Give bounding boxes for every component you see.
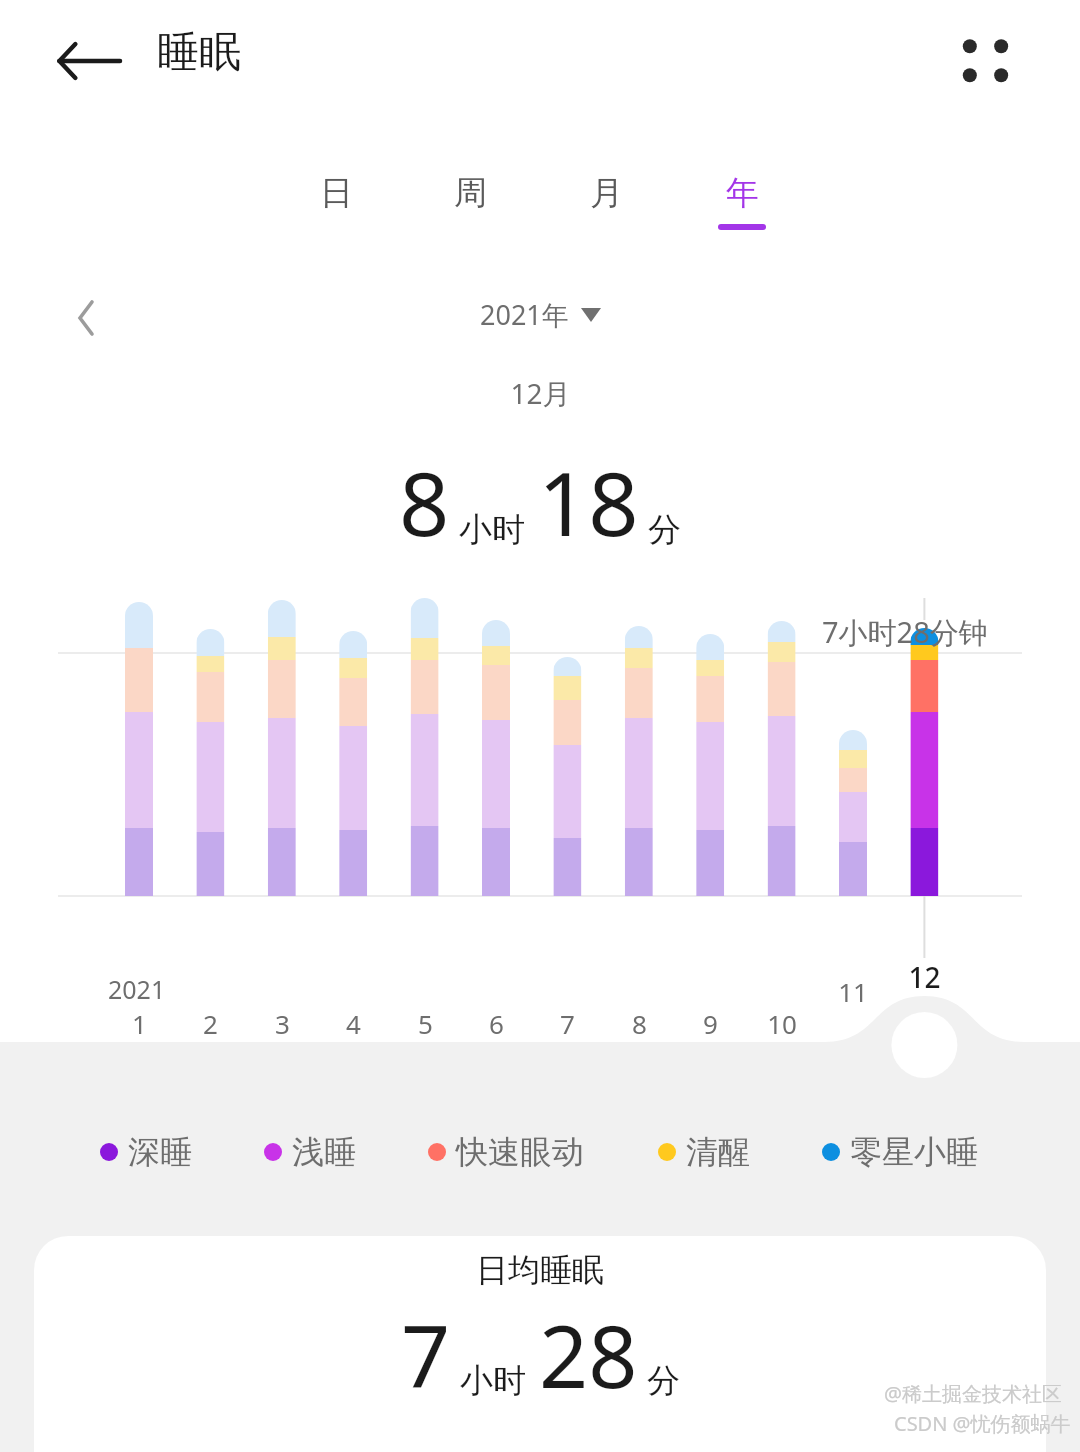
staticText: 11 <box>838 974 868 1009</box>
staticText: 浅睡 <box>292 1132 356 1172</box>
staticText: 2021年 <box>480 296 569 333</box>
staticText: 清醒 <box>686 1132 750 1172</box>
button[interactable]: Back <box>52 26 126 96</box>
button[interactable]: 12 <box>884 958 964 996</box>
staticText: 7小时28分钟 <box>822 612 988 652</box>
staticText: 9 <box>703 1006 718 1041</box>
staticText: 周 <box>454 172 487 214</box>
button[interactable]: 6 <box>456 1006 536 1041</box>
button[interactable]: More options <box>936 22 1034 98</box>
staticText: @稀土掘金技术社区 <box>884 1380 1062 1407</box>
staticText: 8 <box>399 442 450 562</box>
button[interactable]: 年 <box>692 172 792 264</box>
staticText: 分 <box>647 1360 680 1402</box>
staticText: 小时 <box>460 1360 526 1402</box>
button[interactable]: 3 <box>242 1006 322 1041</box>
staticText: CSDN @忧伤额蜗牛 <box>894 1410 1071 1437</box>
staticText: 年 <box>726 172 759 214</box>
button[interactable]: 深睡 <box>100 1132 192 1172</box>
button[interactable]: 10 <box>742 1006 822 1041</box>
staticText: 月 <box>590 172 623 214</box>
staticText: 5 <box>418 1006 433 1041</box>
staticText: 睡眠 <box>157 26 241 79</box>
staticText: 1 <box>132 1006 147 1041</box>
button[interactable]: 快速眼动 <box>428 1132 584 1172</box>
staticText: 日 <box>320 172 353 214</box>
button[interactable]: 8 <box>599 1006 679 1041</box>
staticText: 10 <box>767 1006 797 1041</box>
button[interactable]: 4 <box>313 1006 393 1041</box>
button[interactable] <box>34 1236 1046 1452</box>
staticText: 12 <box>908 958 941 996</box>
button[interactable]: 11 <box>813 974 893 1009</box>
staticText: 4 <box>346 1006 361 1041</box>
staticText: 深睡 <box>128 1132 192 1172</box>
staticText: 分 <box>648 509 681 551</box>
staticText: 18 <box>538 442 639 562</box>
button[interactable]: 9 <box>670 1006 750 1041</box>
button[interactable]: 2021年 <box>340 296 740 333</box>
button[interactable]: 5 <box>385 1006 465 1041</box>
button[interactable]: 日 <box>286 172 386 264</box>
staticText: 零星小睡 <box>850 1132 978 1172</box>
staticText: 日均睡眠 <box>476 1250 604 1290</box>
staticText: 2021 <box>108 972 166 1006</box>
button[interactable]: Previous year <box>50 284 120 352</box>
button[interactable]: 2 <box>170 1006 250 1041</box>
button[interactable]: 清醒 <box>658 1132 750 1172</box>
button[interactable]: 浅睡 <box>264 1132 356 1172</box>
staticText: 2 <box>203 1006 218 1041</box>
button[interactable]: 1 <box>99 1006 179 1041</box>
staticText: 12月 <box>510 374 571 412</box>
staticText: 7 <box>401 1296 451 1413</box>
button[interactable]: 月 <box>556 172 656 264</box>
staticText: 小时 <box>459 509 525 551</box>
staticText: 6 <box>489 1006 504 1041</box>
button[interactable]: 周 <box>420 172 520 264</box>
staticText: 快速眼动 <box>456 1132 584 1172</box>
staticText: 7 <box>560 1006 575 1041</box>
button[interactable]: 零星小睡 <box>822 1132 978 1172</box>
staticText: 8 <box>632 1006 647 1041</box>
button[interactable]: 7 <box>527 1006 607 1041</box>
staticText: 28 <box>539 1296 638 1413</box>
staticText: 3 <box>275 1006 290 1041</box>
